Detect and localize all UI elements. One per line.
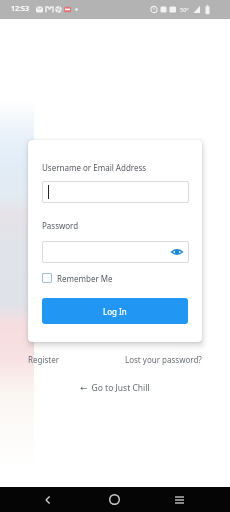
staticText: Log In bbox=[103, 306, 127, 317]
staticText: 12:53 bbox=[11, 4, 29, 14]
staticText: Register bbox=[28, 354, 60, 365]
button[interactable]: Log In bbox=[42, 298, 188, 324]
staticText: Password bbox=[42, 220, 79, 231]
button[interactable] bbox=[169, 489, 190, 510]
button[interactable]: Remember Me bbox=[42, 271, 113, 285]
button[interactable]: Lost your password? bbox=[125, 354, 202, 365]
button[interactable] bbox=[42, 241, 189, 263]
button[interactable] bbox=[37, 489, 58, 510]
staticText: ← Go to Just Chill bbox=[80, 382, 150, 394]
button[interactable]: ← Go to Just Chill bbox=[80, 382, 150, 394]
button[interactable]: Register bbox=[28, 354, 60, 365]
button[interactable] bbox=[104, 489, 125, 510]
staticText: Username or Email Address bbox=[42, 162, 147, 173]
staticText: Remember Me bbox=[57, 273, 113, 284]
staticText: Lost your password? bbox=[125, 354, 202, 365]
button[interactable] bbox=[171, 247, 183, 257]
staticText: 50° bbox=[180, 6, 189, 13]
button[interactable] bbox=[42, 181, 189, 203]
